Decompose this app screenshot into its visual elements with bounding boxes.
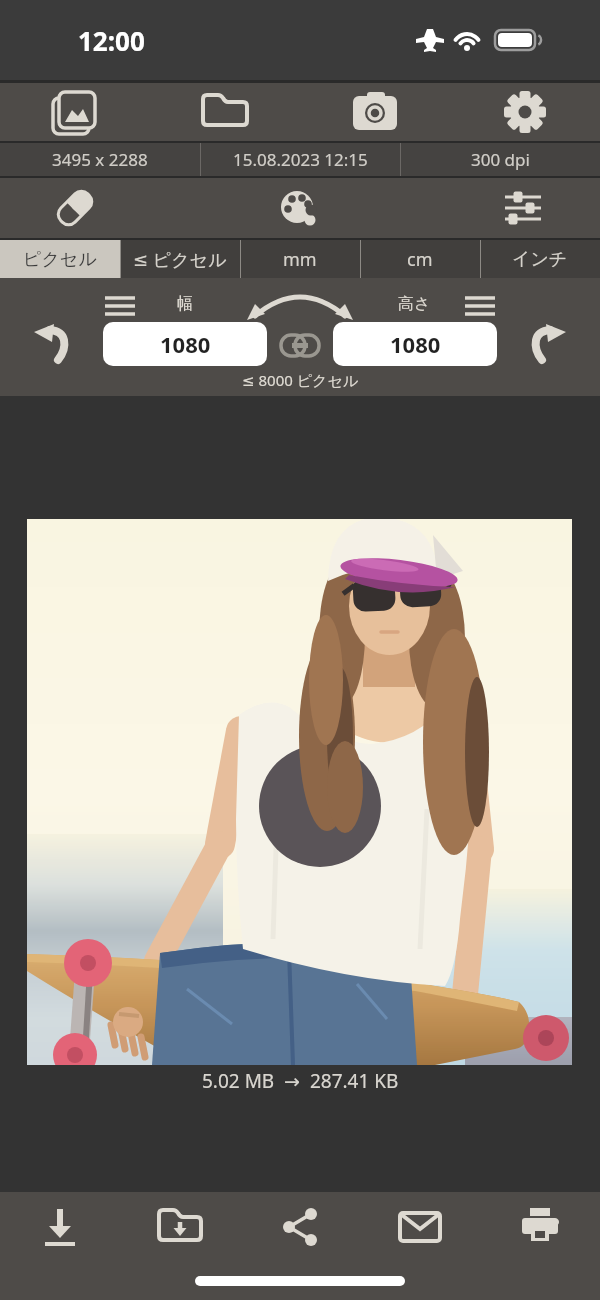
button[interactable]: ピクセル: [0, 240, 120, 278]
staticText: インチ: [512, 248, 568, 271]
button[interactable]: インチ: [480, 240, 600, 278]
staticText: ≤ 8000 ピクセル: [242, 370, 359, 390]
staticText: ピクセル: [23, 248, 97, 271]
button[interactable]: 300 dpi: [401, 143, 600, 176]
button[interactable]: 15.08.2023 12:15: [201, 143, 400, 176]
staticText: 15.08.2023 12:15: [233, 148, 368, 171]
staticText: cm: [407, 247, 433, 272]
staticText: 高さ: [398, 294, 431, 314]
button[interactable]: [300, 83, 450, 141]
staticText: 5.02 MB → 287.41 KB: [202, 1068, 399, 1094]
button[interactable]: [105, 296, 135, 318]
button[interactable]: 3495 x 2288: [0, 143, 200, 176]
staticText: ≤ ピクセル: [133, 247, 227, 272]
button[interactable]: [0, 1192, 120, 1262]
button[interactable]: mm: [240, 240, 360, 278]
button[interactable]: [532, 324, 568, 364]
button[interactable]: [120, 1192, 240, 1262]
button[interactable]: [446, 178, 600, 238]
button[interactable]: [480, 1192, 600, 1262]
button[interactable]: [450, 83, 600, 141]
button[interactable]: 1080: [333, 322, 497, 366]
staticText: 1080: [160, 329, 211, 359]
button[interactable]: ≤ ピクセル: [120, 240, 240, 278]
button[interactable]: [0, 83, 150, 141]
staticText: mm: [283, 247, 317, 272]
staticText: 300 dpi: [471, 148, 530, 171]
button[interactable]: 1080: [103, 322, 267, 366]
button[interactable]: [150, 83, 300, 141]
button[interactable]: [32, 324, 68, 364]
button[interactable]: [150, 178, 446, 238]
button[interactable]: [0, 178, 150, 238]
staticText: 3495 x 2288: [52, 148, 148, 171]
button[interactable]: cm: [360, 240, 480, 278]
button[interactable]: [240, 1192, 360, 1262]
button[interactable]: [281, 335, 319, 356]
staticText: 幅: [177, 294, 193, 314]
staticText: 12:00: [78, 23, 145, 58]
button[interactable]: [360, 1192, 480, 1262]
button[interactable]: [465, 296, 495, 318]
staticText: 1080: [390, 329, 441, 359]
button[interactable]: [27, 519, 572, 1065]
